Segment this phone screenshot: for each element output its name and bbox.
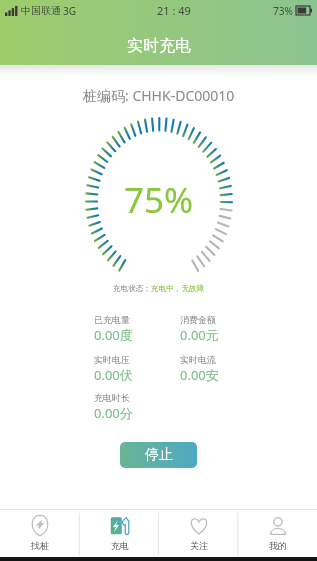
staticText: 已充电量: [94, 314, 130, 325]
button[interactable]: 我的: [238, 509, 317, 557]
staticText: 实时充电: [127, 36, 191, 56]
button[interactable]: 停止: [120, 442, 197, 468]
staticText: 0.00分: [94, 404, 133, 422]
staticText: 充电时长: [94, 392, 130, 403]
staticText: 73%: [273, 4, 293, 18]
staticText: 75%: [124, 176, 194, 224]
staticText: 桩编码: CHHK-DC00010: [83, 86, 235, 105]
staticText: 消费金额: [180, 314, 216, 325]
button[interactable]: 充电: [80, 509, 159, 557]
staticText: 停止: [145, 446, 173, 464]
staticText: 21 : 49: [157, 3, 191, 18]
staticText: 0.00度: [94, 326, 133, 344]
staticText: 中国联通: [21, 4, 61, 17]
staticText: 0.00元: [180, 326, 219, 344]
button[interactable]: 关注: [159, 509, 238, 557]
staticText: 3G: [63, 4, 76, 18]
staticText: 充电中，无故障: [151, 284, 205, 294]
button[interactable]: 找桩: [0, 509, 80, 557]
staticText: 0.00安: [180, 366, 219, 384]
staticText: 实时电压: [94, 354, 130, 365]
staticText: 充电状态：: [113, 284, 151, 294]
staticText: 充电: [111, 540, 129, 551]
staticText: 找桩: [31, 540, 49, 551]
staticText: 关注: [190, 540, 208, 551]
staticText: 我的: [269, 540, 287, 551]
staticText: 实时电流: [180, 354, 216, 365]
staticText: 0.00伏: [94, 366, 133, 384]
